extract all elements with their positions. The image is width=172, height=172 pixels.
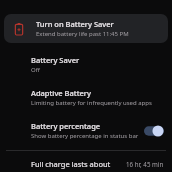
button[interactable]: Battery Saver [0, 54, 172, 75]
button[interactable]: Adaptive Battery [0, 87, 172, 108]
staticText: 16 hr, 45 min [126, 160, 164, 168]
staticText: Off [31, 66, 40, 74]
staticText: Adaptive Battery [31, 88, 91, 98]
button[interactable]: Battery percentage [0, 120, 172, 141]
staticText: Full charge lasts about [31, 159, 111, 169]
staticText: Turn on Battery Saver [36, 19, 114, 29]
staticText: Battery Saver [31, 55, 80, 65]
staticText: Extend battery life past 11:45 PM [36, 30, 129, 38]
button[interactable]: Turn on Battery Saver [4, 14, 168, 43]
staticText: Show battery percentage in status bar [31, 132, 139, 140]
staticText: Limiting battery for infrequently used a… [31, 99, 152, 107]
button[interactable]: Full charge lasts about [0, 159, 172, 169]
button[interactable]: Battery percentage toggle [144, 125, 164, 137]
staticText: Battery percentage [31, 121, 101, 131]
